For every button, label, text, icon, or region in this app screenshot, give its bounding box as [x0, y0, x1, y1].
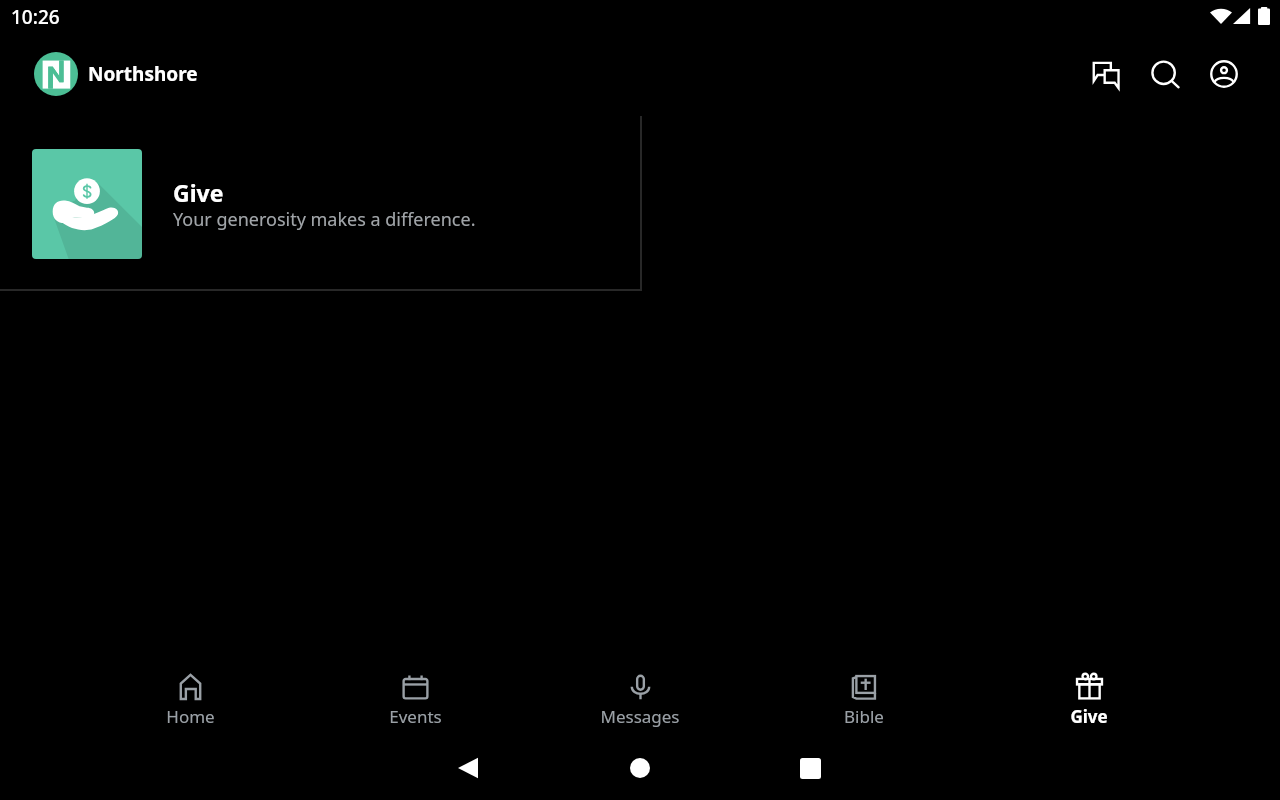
button[interactable]: Messages [1082, 50, 1130, 98]
button[interactable]: Give [0, 116, 642, 291]
staticText: 10:26 [11, 4, 60, 30]
staticText: Give [173, 177, 224, 208]
button[interactable]: Bible [808, 663, 920, 731]
button[interactable]: Account [1200, 50, 1248, 98]
button[interactable]: Events [359, 663, 471, 731]
button[interactable]: Back [444, 744, 492, 792]
button[interactable]: Recents [786, 744, 834, 792]
button[interactable]: Search [1141, 50, 1189, 98]
staticText: Your generosity makes a difference. [173, 207, 476, 232]
button[interactable]: Home [616, 744, 664, 792]
button[interactable]: Home [134, 663, 246, 731]
staticText: Bible [844, 705, 884, 728]
staticText: Events [389, 705, 442, 728]
button[interactable]: Messages [584, 663, 696, 731]
staticText: Messages [600, 705, 680, 728]
staticText: Northshore [88, 61, 198, 87]
button[interactable]: Northshore [34, 52, 198, 96]
staticText: Home [166, 705, 215, 728]
staticText: Give [1070, 705, 1108, 728]
button[interactable]: Give [1033, 663, 1145, 731]
